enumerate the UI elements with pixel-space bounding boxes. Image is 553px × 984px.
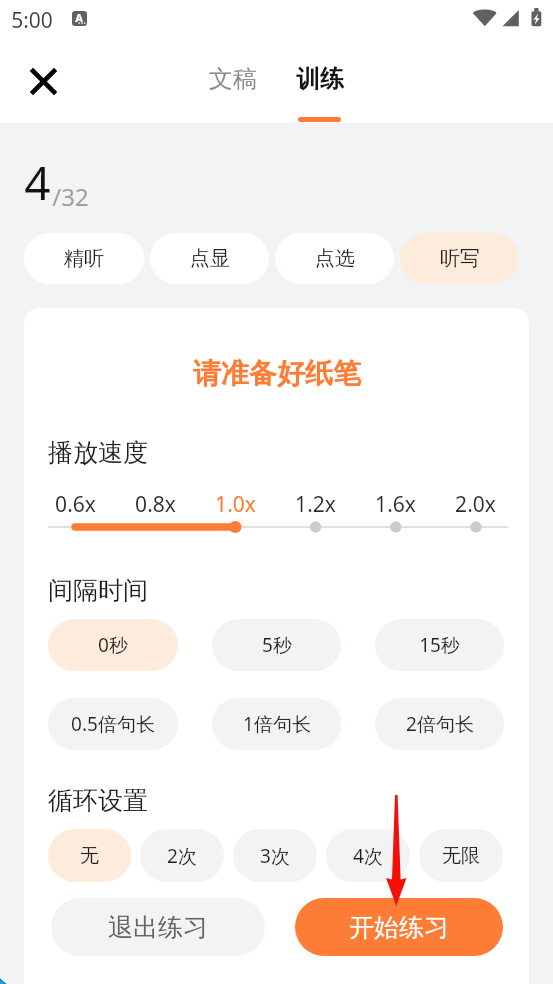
button[interactable]: 2.0x <box>435 490 515 519</box>
staticText: 点显 <box>190 246 230 271</box>
staticText: 无 <box>80 844 99 868</box>
staticText: 2倍句长 <box>406 711 474 737</box>
button[interactable]: 无 <box>48 829 131 882</box>
staticText: 训练 <box>296 64 344 94</box>
button[interactable]: 无限 <box>419 829 503 882</box>
staticText: 1.2x <box>295 490 336 519</box>
staticText: 1倍句长 <box>243 711 311 737</box>
staticText: 开始练习 <box>349 912 449 943</box>
staticText: 听写 <box>440 246 480 271</box>
button[interactable]: 1.6x <box>355 490 435 519</box>
staticText: 文稿 <box>209 64 257 94</box>
staticText: 点选 <box>315 246 355 271</box>
staticText: 0秒 <box>98 632 128 658</box>
staticText: 循环设置 <box>48 785 148 816</box>
button[interactable]: 退出练习 <box>51 898 265 956</box>
button[interactable]: 0.5倍句长 <box>48 698 178 750</box>
staticText: A <box>75 11 83 25</box>
staticText: 4次 <box>353 843 383 869</box>
button[interactable]: 1倍句长 <box>212 698 341 750</box>
staticText: 2.0x <box>455 490 496 519</box>
button[interactable]: 文稿 <box>195 60 271 98</box>
staticText: 退出练习 <box>108 912 208 943</box>
staticText: 0.6x <box>55 490 96 519</box>
staticText: 0.5倍句长 <box>71 711 155 737</box>
staticText: 5:00 <box>11 6 53 35</box>
button[interactable]: 1.2x <box>275 490 355 519</box>
button[interactable]: 训练 <box>282 60 358 98</box>
staticText: 5秒 <box>262 632 292 658</box>
staticText: 精听 <box>64 246 104 271</box>
button[interactable]: 2倍句长 <box>375 698 504 750</box>
button[interactable]: 2次 <box>140 829 224 882</box>
staticText: 无限 <box>442 844 480 868</box>
staticText: 播放速度 <box>48 437 148 468</box>
staticText: 1.0x <box>215 490 256 519</box>
button[interactable]: Close <box>21 58 65 102</box>
staticText: 1.6x <box>375 490 416 519</box>
staticText: 0.8x <box>135 490 176 519</box>
button[interactable]: 5秒 <box>212 619 341 671</box>
button[interactable]: 1.0x <box>195 490 275 519</box>
staticText: 请准备好纸笔 <box>193 356 361 391</box>
button[interactable]: 0秒 <box>48 619 178 671</box>
button[interactable]: 3次 <box>233 829 317 882</box>
button[interactable]: 4次 <box>326 829 410 882</box>
button[interactable]: 精听 <box>24 233 144 284</box>
staticText: 2次 <box>167 843 197 869</box>
button[interactable]: 0.8x <box>115 490 195 519</box>
button[interactable]: 开始练习 <box>295 898 503 956</box>
staticText: 15秒 <box>419 632 460 658</box>
button[interactable]: 听写 <box>400 233 519 284</box>
button[interactable]: 点选 <box>275 233 394 284</box>
staticText: 3次 <box>260 843 290 869</box>
button[interactable]: 0.6x <box>35 490 115 519</box>
button[interactable]: 点显 <box>150 233 269 284</box>
staticText: 间隔时间 <box>48 575 148 606</box>
staticText: 4 <box>24 151 51 214</box>
button[interactable]: 15秒 <box>375 619 504 671</box>
staticText: /32 <box>52 180 89 213</box>
